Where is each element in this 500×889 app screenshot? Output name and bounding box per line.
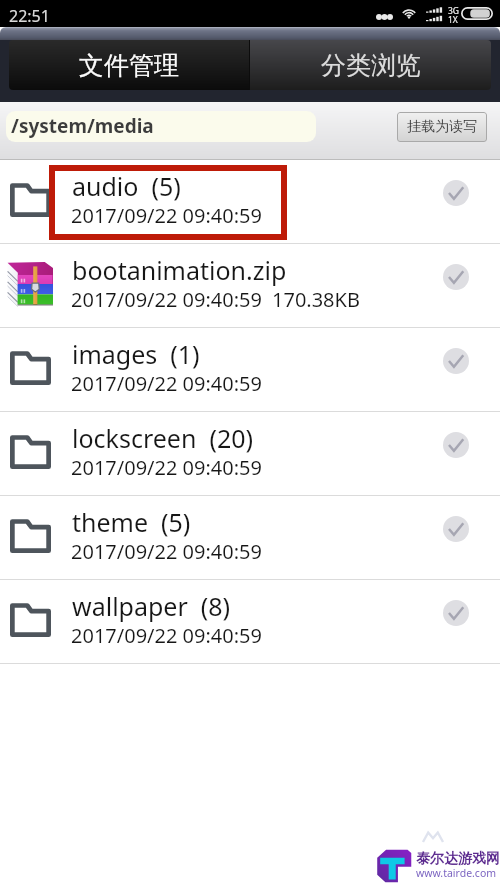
staticText: 2017/09/22 09:40:59 — [71, 202, 262, 229]
staticText: wallpaper (8) — [72, 589, 231, 623]
button[interactable]: Select — [443, 516, 469, 542]
staticText: 分类浏览 — [321, 50, 421, 81]
button[interactable]: Select — [443, 432, 469, 458]
staticText: 泰尔达游戏网 — [416, 850, 500, 868]
staticText: 挂载为读写 — [407, 118, 477, 136]
button[interactable]: audio (5) — [0, 160, 500, 244]
staticText: 2017/09/22 09:40:59 — [71, 454, 262, 481]
button[interactable]: bootanimation.zip — [0, 244, 500, 328]
staticText: 2017/09/22 09:40:59 — [71, 538, 262, 565]
button[interactable]: wallpaper (8) — [0, 580, 500, 664]
staticText: bootanimation.zip — [72, 253, 287, 287]
button[interactable]: Select — [443, 348, 469, 374]
staticText: 2017/09/22 09:40:59 — [71, 286, 262, 313]
staticText: 2017/09/22 09:40:59 — [71, 370, 262, 397]
staticText: audio (5) — [72, 169, 181, 203]
button[interactable]: Select — [443, 180, 469, 206]
staticText: theme (5) — [72, 505, 191, 539]
staticText: /system/media — [11, 113, 154, 139]
staticText: 22:51 — [9, 5, 50, 27]
staticText: 170.38KB — [272, 286, 360, 313]
button[interactable]: /system/media — [6, 111, 316, 142]
button[interactable]: 分类浏览 — [250, 40, 491, 90]
staticText: 3G — [448, 5, 460, 17]
button[interactable]: Select — [443, 600, 469, 626]
staticText: lockscreen (20) — [72, 421, 253, 455]
staticText: 1X — [448, 14, 458, 26]
staticText: images (1) — [72, 337, 200, 371]
staticText: 2017/09/22 09:40:59 — [71, 622, 262, 649]
button[interactable]: 挂载为读写 — [397, 112, 487, 142]
staticText: 文件管理 — [79, 50, 179, 81]
button[interactable]: images (1) — [0, 328, 500, 412]
staticText: www.tairde.com — [416, 866, 497, 880]
button[interactable]: 文件管理 — [9, 40, 249, 90]
button[interactable]: Select — [443, 264, 469, 290]
button[interactable]: lockscreen (20) — [0, 412, 500, 496]
button[interactable]: theme (5) — [0, 496, 500, 580]
